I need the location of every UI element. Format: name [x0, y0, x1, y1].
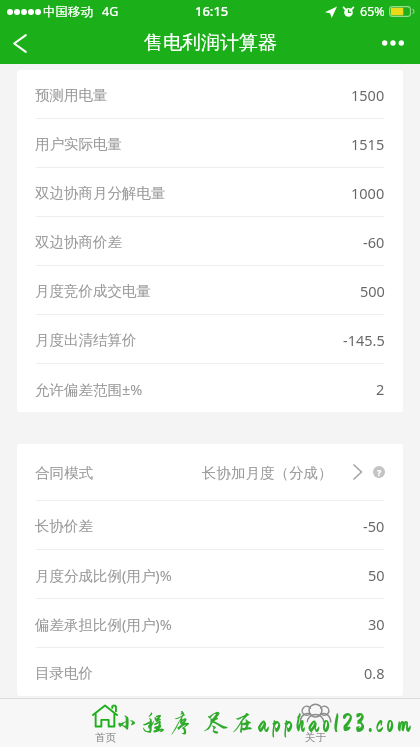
- staticText: 月度出清结算价: [35, 331, 137, 349]
- staticText: 16:15: [195, 2, 229, 20]
- staticText: -145.5: [343, 330, 385, 350]
- staticText: 1515: [351, 134, 385, 154]
- staticText: 0.8: [364, 663, 385, 683]
- staticText: 目录电价: [35, 664, 93, 682]
- staticText: 小程序 尽在apphao123.com: [115, 710, 414, 736]
- button[interactable]: 首页: [0, 699, 210, 747]
- staticText: 预测用电量: [35, 86, 108, 104]
- staticText: 双边协商月分解电量: [35, 184, 166, 202]
- staticText: 1000: [351, 183, 385, 203]
- button[interactable]: Help: [373, 466, 385, 478]
- staticText: 长协加月度（分成）: [202, 464, 333, 482]
- staticText: 4G: [102, 3, 119, 20]
- staticText: 65%: [360, 3, 385, 20]
- staticText: 月度竞价成交电量: [35, 282, 151, 300]
- staticText: 长协价差: [35, 517, 93, 535]
- staticText: 双边协商价差: [35, 233, 122, 251]
- staticText: 售电利润计算器: [144, 31, 277, 55]
- button[interactable]: 允许偏差范围±%: [17, 364, 403, 412]
- button[interactable]: More options: [366, 22, 420, 64]
- button[interactable]: 双边协商价差: [17, 217, 403, 265]
- staticText: 50: [368, 565, 385, 585]
- button[interactable]: 偏差承担比例(用户)%: [17, 599, 403, 647]
- staticText: 允许偏差范围±%: [35, 379, 143, 399]
- button[interactable]: 长协价差: [17, 501, 403, 549]
- staticText: 1500: [351, 85, 385, 105]
- button[interactable]: Back: [0, 22, 40, 64]
- button[interactable]: 月度出清结算价: [17, 315, 403, 363]
- staticText: 合同模式: [35, 464, 93, 482]
- staticText: 500: [360, 281, 385, 301]
- staticText: 30: [368, 614, 385, 634]
- button[interactable]: 合同模式: [17, 444, 403, 500]
- button[interactable]: 目录电价: [17, 648, 403, 696]
- staticText: 用户实际电量: [35, 135, 122, 153]
- button[interactable]: 用户实际电量: [17, 119, 403, 167]
- staticText: 中国移动: [43, 4, 93, 20]
- staticText: -50: [363, 516, 385, 536]
- staticText: 偏差承担比例(用户)%: [35, 614, 172, 634]
- staticText: 2: [376, 379, 385, 399]
- staticText: ?: [377, 466, 382, 478]
- button[interactable]: 预测用电量: [17, 70, 403, 118]
- staticText: 关于: [305, 731, 326, 744]
- button[interactable]: 关于: [210, 699, 420, 747]
- button[interactable]: 月度分成比例(用户)%: [17, 550, 403, 598]
- staticText: 月度分成比例(用户)%: [35, 565, 172, 585]
- button[interactable]: 双边协商月分解电量: [17, 168, 403, 216]
- button[interactable]: 月度竞价成交电量: [17, 266, 403, 314]
- staticText: -60: [363, 232, 385, 252]
- staticText: 首页: [95, 731, 116, 744]
